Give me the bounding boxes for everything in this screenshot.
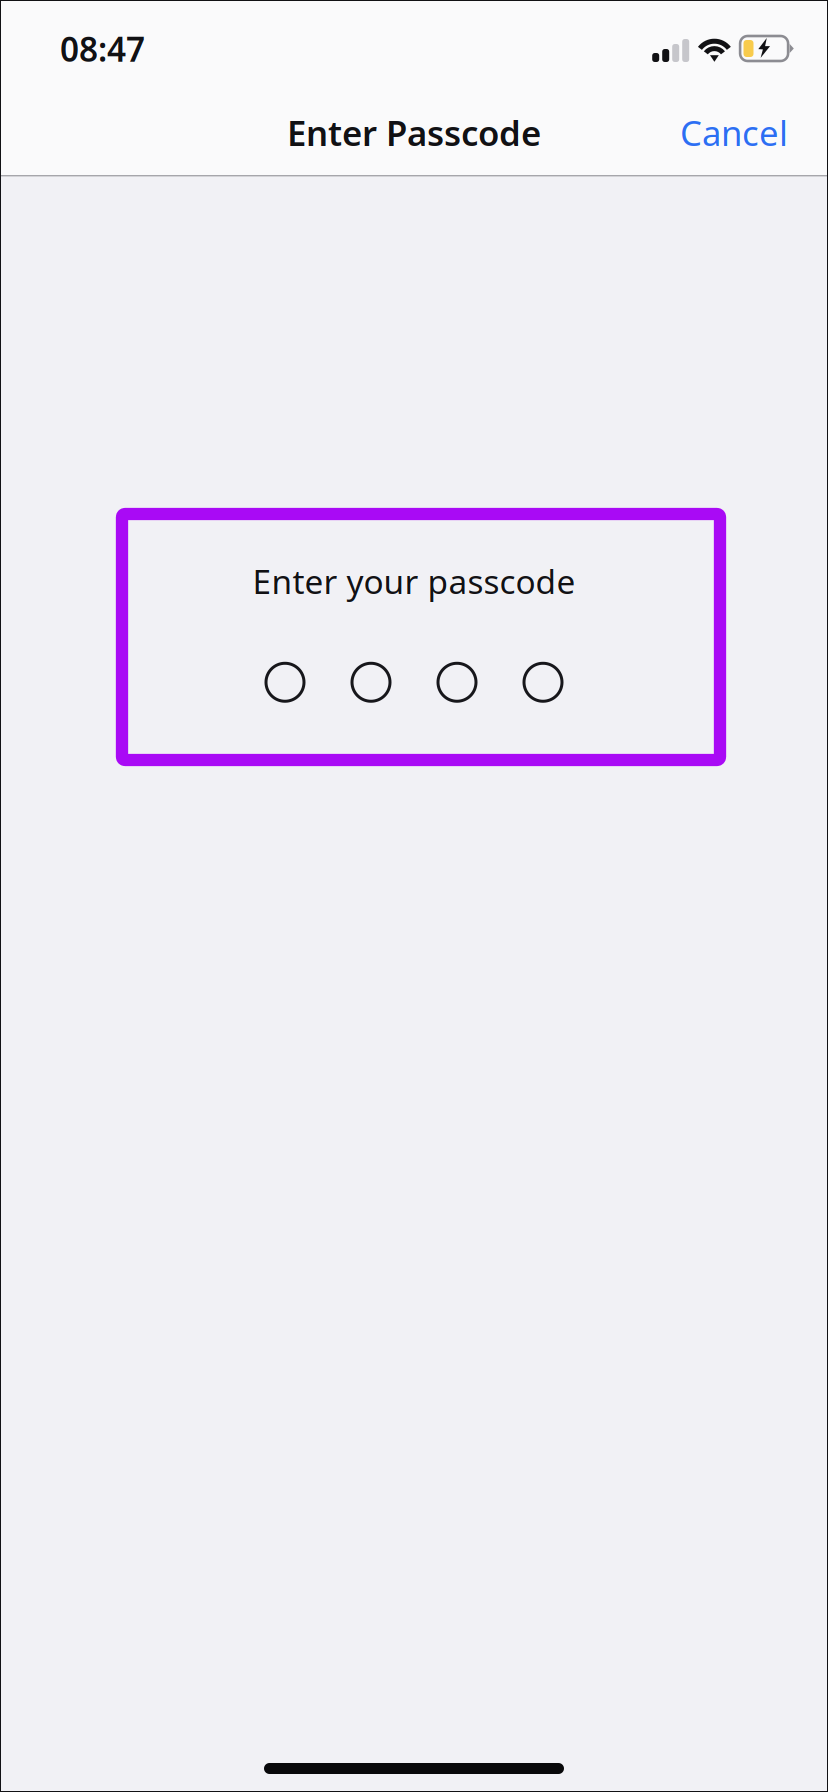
staticText: Enter Passcode (287, 109, 541, 155)
staticText: Cancel (680, 109, 788, 155)
button[interactable]: Enter your passcode (115, 514, 713, 760)
staticText: 08:47 (60, 27, 145, 71)
staticText: Enter your passcode (252, 559, 575, 603)
button[interactable]: Cancel (666, 95, 802, 169)
